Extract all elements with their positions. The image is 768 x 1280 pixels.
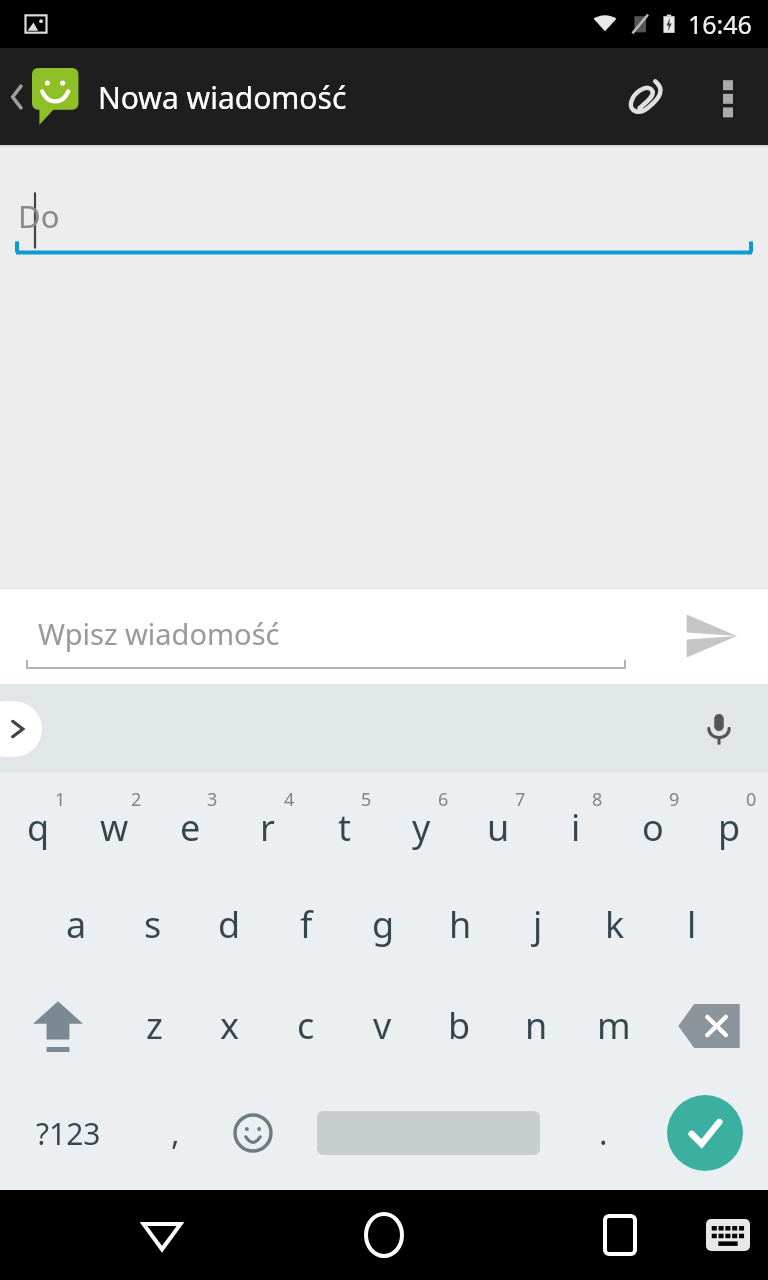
staticText: ?123: [36, 1113, 101, 1154]
button[interactable]: Shift: [0, 975, 116, 1076]
staticText: 7: [515, 787, 526, 812]
staticText: Wpisz wiadomość: [38, 614, 280, 653]
button[interactable]: More options: [696, 65, 760, 129]
staticText: y: [412, 803, 431, 852]
button[interactable]: Expand suggestions: [0, 701, 42, 757]
staticText: 16:46: [688, 7, 752, 41]
staticText: w: [100, 803, 129, 852]
staticText: 0: [746, 787, 757, 812]
button[interactable]: Home: [348, 1199, 420, 1271]
staticText: f: [300, 900, 313, 949]
staticText: o: [642, 803, 664, 852]
staticText: g: [372, 900, 395, 949]
staticText: Do: [18, 195, 60, 237]
button[interactable]: q: [0, 773, 76, 874]
staticText: k: [605, 900, 625, 949]
button[interactable]: h: [422, 874, 499, 975]
staticText: r: [260, 803, 275, 852]
button[interactable]: Recents: [584, 1199, 656, 1271]
button[interactable]: a: [38, 874, 114, 975]
button[interactable]: b: [421, 975, 498, 1076]
staticText: 6: [438, 787, 449, 812]
staticText: 8: [592, 787, 603, 812]
button[interactable]: m: [575, 975, 652, 1076]
button[interactable]: w: [76, 773, 152, 874]
staticText: i: [571, 803, 581, 852]
staticText: u: [487, 803, 510, 852]
button[interactable]: c: [268, 975, 344, 1076]
button[interactable]: Backspace: [652, 975, 768, 1076]
staticText: l: [687, 900, 697, 949]
button[interactable]: u: [460, 773, 537, 874]
staticText: b: [448, 1001, 471, 1050]
staticText: v: [373, 1001, 392, 1050]
staticText: 2: [131, 787, 142, 812]
button[interactable]: ?123: [0, 1076, 136, 1190]
button[interactable]: g: [345, 874, 422, 975]
button[interactable]: z: [116, 975, 192, 1076]
button[interactable]: Wpisz wiadomość: [26, 598, 626, 674]
staticText: x: [220, 1001, 240, 1050]
button[interactable]: p: [691, 773, 768, 874]
staticText: t: [338, 803, 351, 852]
staticText: m: [597, 1001, 631, 1050]
button[interactable]: j: [499, 874, 576, 975]
staticText: a: [66, 900, 87, 949]
button[interactable]: Attach: [614, 65, 678, 129]
button[interactable]: Back: [126, 1199, 198, 1271]
button[interactable]: k: [576, 874, 653, 975]
button[interactable]: Emoji: [214, 1076, 292, 1190]
button[interactable]: Do: [0, 175, 768, 265]
staticText: q: [27, 803, 50, 852]
staticText: 5: [361, 787, 372, 812]
button[interactable]: x: [192, 975, 268, 1076]
staticText: Nowa wiadomość: [98, 77, 347, 118]
staticText: z: [146, 1001, 163, 1050]
button[interactable]: i: [537, 773, 614, 874]
button[interactable]: y: [383, 773, 460, 874]
button[interactable]: t: [306, 773, 383, 874]
button[interactable]: Back: [8, 68, 347, 126]
button[interactable]: v: [344, 975, 421, 1076]
other: Back: [8, 80, 26, 114]
button[interactable]: e: [152, 773, 229, 874]
button[interactable]: o: [614, 773, 691, 874]
staticText: e: [180, 803, 201, 852]
staticText: p: [718, 803, 741, 852]
button[interactable]: Voice input: [688, 698, 750, 760]
staticText: 1: [55, 787, 66, 812]
staticText: .: [599, 1111, 608, 1155]
button[interactable]: Send: [668, 593, 754, 679]
button[interactable]: f: [268, 874, 345, 975]
button[interactable]: ,: [136, 1076, 214, 1190]
button[interactable]: n: [498, 975, 575, 1076]
button[interactable]: .: [564, 1076, 642, 1190]
button[interactable]: Space: [292, 1076, 564, 1190]
button[interactable]: s: [114, 874, 191, 975]
staticText: d: [218, 900, 241, 949]
staticText: n: [525, 1001, 548, 1050]
staticText: 4: [284, 787, 295, 812]
staticText: ,: [171, 1111, 180, 1155]
button[interactable]: d: [191, 874, 268, 975]
staticText: 9: [669, 787, 680, 812]
button[interactable]: Enter: [642, 1076, 768, 1190]
button[interactable]: Switch keyboard: [696, 1203, 760, 1267]
staticText: j: [533, 900, 543, 949]
staticText: s: [144, 900, 162, 949]
button[interactable]: r: [229, 773, 306, 874]
staticText: c: [297, 1001, 315, 1050]
button[interactable]: l: [653, 874, 730, 975]
staticText: 3: [207, 787, 218, 812]
staticText: h: [449, 900, 472, 949]
